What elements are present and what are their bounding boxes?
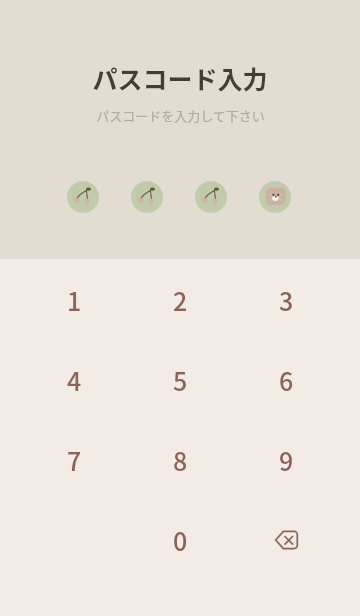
button[interactable]: 7 bbox=[21, 420, 127, 500]
staticText: 6 bbox=[279, 362, 294, 398]
staticText: 0 bbox=[173, 522, 188, 558]
staticText: 1 bbox=[67, 282, 82, 318]
staticText: 2 bbox=[173, 282, 188, 318]
staticText: パスコード入力 bbox=[92, 60, 268, 96]
button[interactable]: 9 bbox=[233, 420, 339, 500]
button[interactable] bbox=[67, 181, 99, 213]
button[interactable] bbox=[131, 181, 163, 213]
staticText: 8 bbox=[173, 442, 188, 478]
staticText: 7 bbox=[67, 442, 82, 478]
button[interactable]: 5 bbox=[127, 340, 233, 420]
staticText: 9 bbox=[279, 442, 294, 478]
other: Backspace bbox=[273, 530, 299, 550]
staticText: 5 bbox=[173, 362, 188, 398]
staticText: 3 bbox=[279, 282, 294, 318]
button[interactable]: 8 bbox=[127, 420, 233, 500]
staticText: パスコードを入力して下さい bbox=[96, 106, 265, 125]
button[interactable]: 6 bbox=[233, 340, 339, 420]
button[interactable]: 4 bbox=[21, 340, 127, 420]
button[interactable]: 3 bbox=[233, 260, 339, 340]
button[interactable] bbox=[195, 181, 227, 213]
button[interactable]: 0 bbox=[127, 500, 233, 580]
button[interactable]: Backspace bbox=[233, 500, 339, 580]
button[interactable]: 1 bbox=[21, 260, 127, 340]
button[interactable] bbox=[259, 181, 291, 213]
button[interactable]: 2 bbox=[127, 260, 233, 340]
staticText: 4 bbox=[67, 362, 82, 398]
